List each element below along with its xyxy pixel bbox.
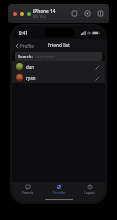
- button[interactable]: Edit dan: [93, 63, 101, 71]
- button[interactable]: Chandler: [43, 182, 74, 197]
- button[interactable]: dan: [12, 61, 105, 72]
- button[interactable]: Maximize window: [27, 12, 31, 16]
- staticText: dan: [26, 64, 34, 70]
- button[interactable]: Home button: [71, 10, 78, 17]
- button[interactable]: Friends: [12, 182, 43, 197]
- staticText: ryan: [26, 75, 36, 81]
- staticText: iPhone 14: [33, 8, 56, 14]
- staticText: iOS 16.2: [33, 14, 46, 19]
- staticText: Search:: [18, 54, 33, 60]
- button[interactable]: Minimize window: [20, 12, 24, 16]
- staticText: friend list: [48, 42, 70, 49]
- staticText: Friends: [22, 191, 33, 195]
- button[interactable]: ryan: [12, 72, 105, 83]
- button[interactable]: Close window: [13, 12, 17, 16]
- staticText: Profile: [20, 43, 34, 49]
- button[interactable]: Search:: [15, 52, 102, 61]
- button[interactable]: Logout: [74, 182, 105, 197]
- staticText: Chandler: [52, 191, 66, 195]
- button[interactable]: Edit ryan: [93, 74, 101, 82]
- staticText: username: [35, 54, 55, 60]
- staticText: Logout: [84, 191, 95, 195]
- button[interactable]: Rotate device: [84, 10, 91, 17]
- button[interactable]: Screenshot: [97, 10, 104, 17]
- button[interactable]: Profile: [15, 43, 34, 49]
- staticText: 9:41: [19, 30, 28, 36]
